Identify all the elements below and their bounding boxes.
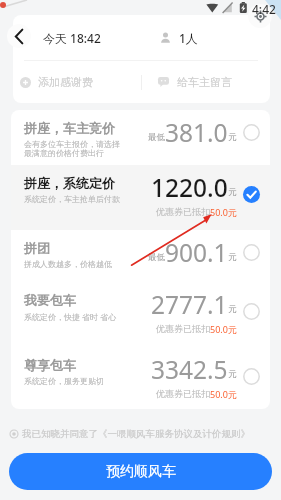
staticText: 预约顺风车	[106, 463, 176, 481]
staticText: 元	[228, 252, 237, 263]
button[interactable]: 我已知晓并同意了《一喂顺风车服务协议及计价规则》	[10, 428, 281, 440]
staticText: 元	[228, 187, 237, 198]
button[interactable]: 给车主留言	[142, 61, 270, 103]
staticText: 我要包车	[24, 292, 76, 308]
staticText: 50.0元	[210, 388, 237, 400]
staticText: 拼团	[24, 240, 50, 256]
button[interactable]: 拼团	[11, 230, 270, 282]
staticText: 尊享包车	[24, 357, 76, 373]
staticText: 拼座，车主竞价	[24, 120, 115, 136]
staticText: 添加感谢费	[38, 75, 93, 89]
staticText: 元	[228, 304, 237, 315]
button[interactable]: 返回	[7, 24, 31, 48]
staticText: 优惠券已抵扣	[156, 206, 210, 217]
staticText: 元	[228, 369, 237, 380]
staticText: 50.0元	[210, 206, 237, 218]
staticText: 3342.5	[151, 353, 228, 386]
staticText: 1220.0	[151, 171, 228, 204]
button[interactable]: 添加感谢费	[13, 61, 141, 103]
staticText: 优惠券已抵扣	[156, 388, 210, 399]
staticText: 系统定价，车主抢单后付款	[24, 194, 120, 204]
staticText: 2777.1	[151, 288, 228, 321]
staticText: 拼成人数越多，价格越低	[24, 259, 112, 269]
button[interactable]: 拼座，系统定价	[11, 165, 270, 230]
staticText: 系统定价，服务更贴切	[24, 376, 104, 386]
staticText: 拼座，系统定价	[24, 175, 115, 191]
staticText: 最低	[148, 252, 165, 263]
staticText: 最低	[148, 132, 165, 143]
button[interactable]: 我要包车	[11, 282, 270, 347]
staticText: 元	[228, 132, 237, 143]
staticText: 900.1	[165, 236, 228, 269]
button[interactable]: 定位	[248, 4, 272, 28]
button[interactable]: 尊享包车	[11, 347, 270, 409]
staticText: 50.0元	[210, 323, 237, 335]
staticText: 4:42	[252, 1, 276, 17]
staticText: 优惠券已抵扣	[156, 323, 210, 334]
staticText: 系统定价，快捷 省时 省心	[24, 311, 117, 322]
staticText: 381.0	[165, 116, 228, 149]
staticText: 我已知晓并同意了《一喂顺风车服务协议及计价规则》	[22, 428, 250, 440]
button[interactable]: 拼座，车主竞价	[11, 110, 270, 165]
button[interactable]: 预约顺风车	[9, 453, 272, 490]
staticText: 今天 18:42	[43, 30, 101, 46]
staticText: 1人	[179, 30, 198, 46]
staticText: 给车主留言	[177, 75, 232, 89]
staticText: 会有多位车主报价，请选择 最满意的价格付费出行	[24, 139, 120, 159]
